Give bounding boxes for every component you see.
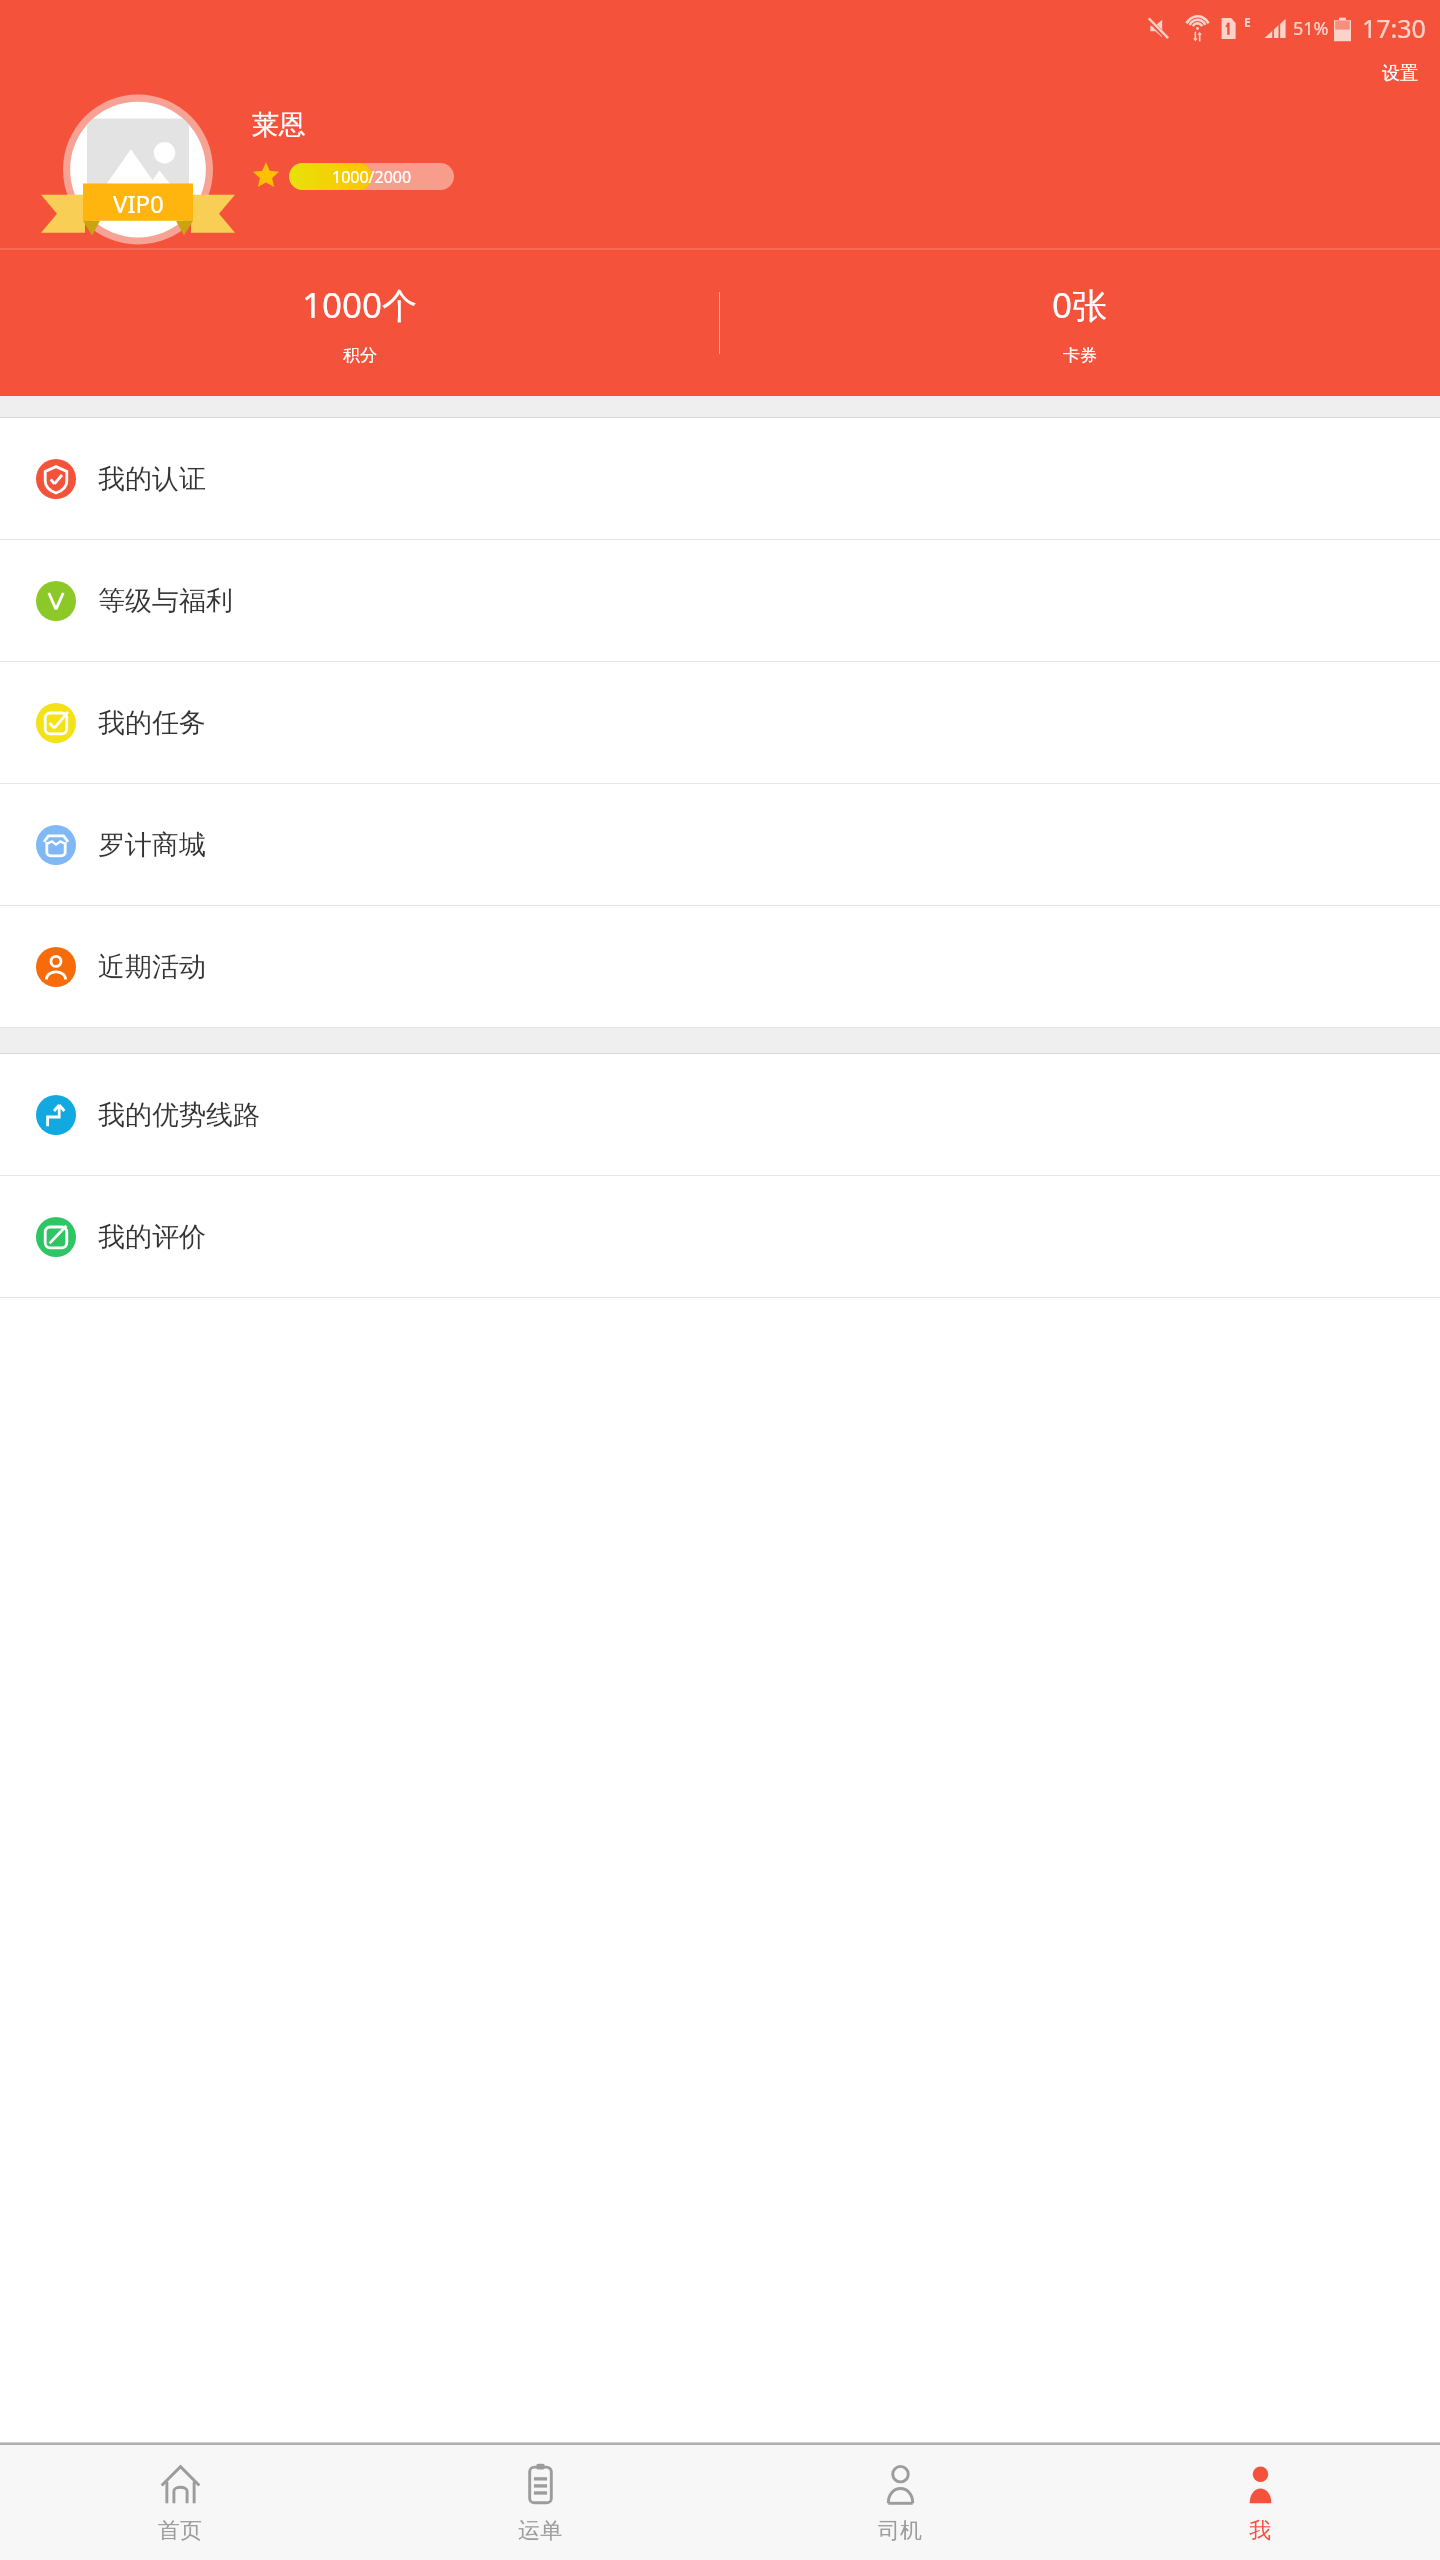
staticText: 积分 [343, 345, 377, 366]
button[interactable]: 司机 [720, 2445, 1080, 2560]
staticText: 罗计商城 [98, 828, 206, 862]
staticText: E [1244, 14, 1251, 30]
staticText: 51% [1293, 16, 1329, 41]
staticText: 我的评价 [98, 1220, 206, 1254]
staticText: 我 [1249, 2517, 1271, 2545]
staticText: 首页 [158, 2517, 202, 2545]
staticText: VIP0 [113, 187, 164, 220]
staticText: 17:30 [1362, 11, 1426, 45]
staticText: 我的任务 [98, 706, 206, 740]
button[interactable]: 我的任务 [0, 662, 1440, 783]
button[interactable]: 1000个 [0, 250, 719, 396]
staticText: 1000/2000 [332, 166, 412, 188]
button[interactable]: 我 [1080, 2445, 1440, 2560]
button[interactable]: 运单 [360, 2445, 720, 2560]
button[interactable]: 0张 [720, 250, 1440, 396]
staticText: 我的优势线路 [98, 1098, 260, 1132]
staticText: 设置 [1382, 62, 1418, 85]
button[interactable]: 罗计商城 [0, 784, 1440, 905]
button[interactable]: 我的优势线路 [0, 1054, 1440, 1175]
button[interactable]: 近期活动 [0, 906, 1440, 1027]
staticText: 1000个 [302, 281, 418, 329]
button[interactable]: 我的评价 [0, 1176, 1440, 1297]
staticText: 0张 [1052, 281, 1108, 329]
button[interactable]: 首页 [0, 2445, 360, 2560]
button[interactable]: 等级与福利 [0, 540, 1440, 661]
button[interactable]: 我的认证 [0, 418, 1440, 539]
staticText: 运单 [518, 2517, 562, 2545]
button[interactable]: 设置 [1376, 58, 1424, 89]
staticText: 我的认证 [98, 462, 206, 496]
staticText: 近期活动 [98, 950, 206, 984]
staticText: 司机 [878, 2517, 922, 2545]
staticText: 卡券 [1063, 345, 1097, 366]
staticText: 莱恩 [252, 108, 306, 142]
staticText: 等级与福利 [98, 584, 233, 618]
